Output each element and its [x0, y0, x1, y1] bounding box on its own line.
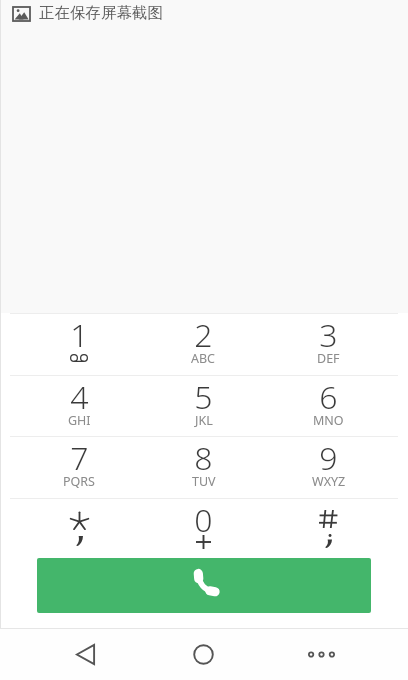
staticText: MNO [313, 412, 344, 429]
button[interactable]: Back [26, 628, 144, 680]
button[interactable] [266, 498, 391, 560]
button[interactable]: 8 [141, 436, 266, 498]
staticText: TUV [192, 473, 216, 490]
button[interactable]: 0 [141, 498, 266, 560]
button[interactable]: 2 [141, 313, 266, 375]
staticText: ABC [191, 350, 216, 367]
staticText: 6 [319, 375, 338, 419]
button[interactable]: Home [144, 628, 262, 680]
button[interactable]: 1 [17, 313, 141, 375]
staticText: 7 [70, 436, 89, 480]
button[interactable]: 5 [141, 375, 266, 437]
button[interactable]: 6 [266, 375, 391, 437]
button[interactable] [17, 498, 141, 560]
staticText: PQRS [63, 473, 95, 490]
staticText: 2 [194, 313, 213, 357]
staticText: 5 [194, 375, 213, 419]
staticText: 正在保存屏幕截图 [39, 3, 163, 23]
staticText: 0 [194, 498, 213, 542]
staticText: 4 [70, 375, 89, 419]
button[interactable]: Call [37, 558, 371, 613]
staticText: JKL [195, 412, 213, 429]
staticText: DEF [317, 350, 340, 367]
button[interactable]: Recent apps [262, 628, 380, 680]
staticText: GHI [68, 412, 91, 429]
staticText: 9 [319, 436, 338, 480]
button[interactable]: 4 [17, 375, 141, 437]
button[interactable]: 3 [266, 313, 391, 375]
staticText: 1 [70, 313, 89, 357]
staticText: 3 [319, 313, 338, 357]
button[interactable]: 9 [266, 436, 391, 498]
staticText: WXYZ [312, 473, 346, 490]
staticText: 8 [194, 436, 213, 480]
button[interactable]: 7 [17, 436, 141, 498]
